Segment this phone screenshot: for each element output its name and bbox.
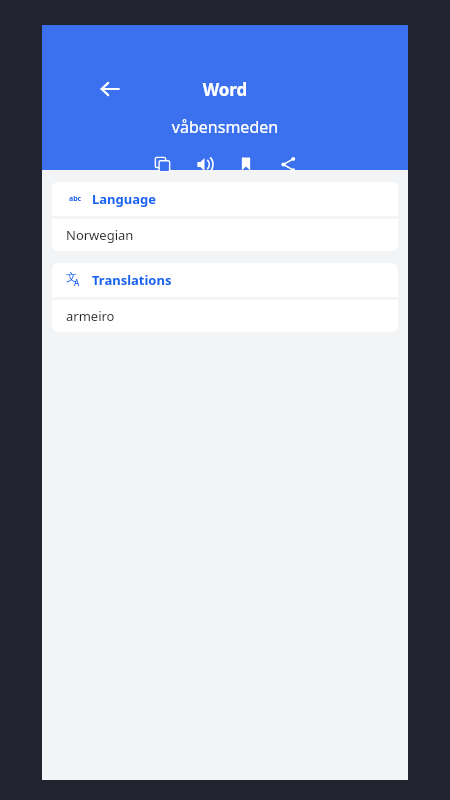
button[interactable]: Copy	[141, 147, 183, 181]
button[interactable]: Share	[267, 147, 309, 181]
staticText: Translations	[92, 271, 172, 289]
button[interactable]: 文	[52, 263, 398, 297]
button[interactable]: Norwegian	[52, 219, 398, 251]
staticText: Word	[42, 78, 408, 101]
staticText: abc	[69, 194, 82, 204]
button[interactable]: Bookmark	[225, 147, 267, 181]
staticText: A	[74, 277, 80, 288]
staticText: Language	[92, 190, 156, 208]
button[interactable]: Back	[93, 72, 127, 106]
staticText: våbensmeden	[42, 116, 408, 138]
staticText: armeiro	[66, 307, 115, 325]
button[interactable]: Listen	[183, 147, 225, 181]
staticText: 文	[66, 270, 77, 284]
staticText: Norwegian	[66, 226, 134, 244]
button[interactable]: abc	[52, 182, 398, 216]
button[interactable]: armeiro	[52, 300, 398, 332]
